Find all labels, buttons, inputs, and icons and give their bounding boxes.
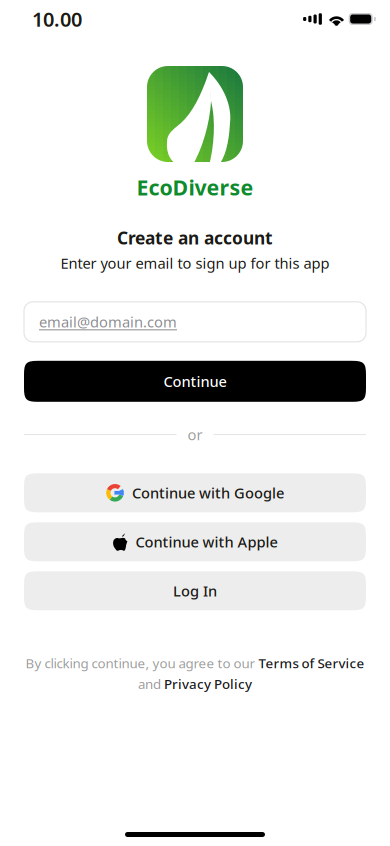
staticText: or [187, 425, 202, 444]
button[interactable]: Continue [24, 361, 366, 402]
button[interactable]: Continue with Google [24, 473, 366, 512]
staticText: Terms of Service [258, 654, 364, 672]
staticText: email@domain.com [39, 312, 177, 332]
staticText: Enter your email to sign up for this app [60, 253, 329, 273]
staticText: Continue with Apple [135, 532, 277, 552]
button[interactable]: Privacy Policy [164, 675, 252, 693]
staticText: Create an account [117, 226, 273, 249]
staticText: 10.00 [32, 6, 82, 32]
staticText: Continue with Google [132, 483, 284, 503]
button[interactable]: Continue with Apple [24, 522, 366, 561]
staticText: Log In [173, 581, 217, 601]
staticText: and [138, 675, 164, 693]
staticText: EcoDiverse [136, 173, 253, 201]
button[interactable]: email@domain.com [24, 302, 366, 342]
staticText: Continue [163, 372, 226, 391]
button[interactable]: Log In [24, 571, 366, 610]
button[interactable]: Terms of Service [258, 654, 364, 672]
staticText: By clicking continue, you agree to our [25, 654, 258, 672]
staticText: Privacy Policy [164, 675, 252, 693]
